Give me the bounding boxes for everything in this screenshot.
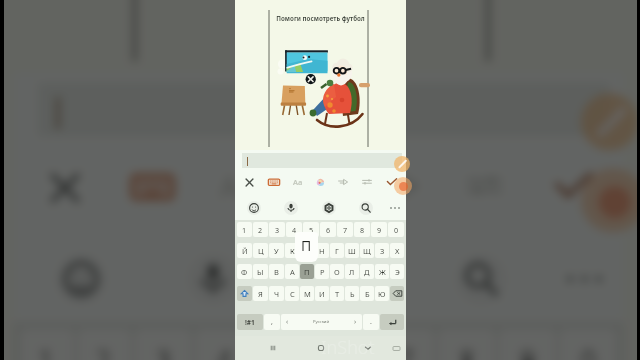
button[interactable]: Э	[390, 264, 404, 279]
button[interactable]: Keyboard	[117, 150, 188, 222]
button[interactable]: Close	[239, 172, 259, 192]
staticText: Е	[305, 246, 310, 256]
button[interactable]: More options	[388, 201, 402, 215]
button[interactable]: Я	[253, 286, 268, 301]
button[interactable]: Done	[538, 150, 609, 222]
button[interactable]: 6	[317, 329, 374, 360]
button[interactable]: 0	[559, 329, 617, 360]
button[interactable]: Search	[456, 254, 506, 304]
button[interactable]: В	[269, 264, 284, 279]
button[interactable]: 7	[377, 329, 434, 360]
button[interactable]: З	[375, 243, 389, 258]
button[interactable]: Ш	[345, 243, 359, 258]
staticText: Ж	[379, 267, 386, 277]
staticText: ‹	[286, 317, 289, 327]
button[interactable]: Close	[27, 150, 99, 222]
staticText: 2	[95, 340, 113, 360]
button[interactable]: О	[330, 264, 344, 279]
button[interactable]: Keyboard	[264, 172, 284, 192]
button[interactable]: 1	[237, 222, 252, 237]
staticText: 6	[326, 225, 331, 235]
button[interactable]: Edit text	[394, 156, 410, 172]
button[interactable]: Ц	[253, 243, 268, 258]
button[interactable]: Щ	[360, 243, 374, 258]
button[interactable]: Ч	[269, 286, 284, 301]
button[interactable]: 5	[256, 329, 313, 360]
button[interactable]: Л	[345, 264, 359, 279]
button[interactable]: 8	[354, 222, 370, 237]
button[interactable]: Search	[359, 201, 373, 215]
button[interactable]: Ь	[345, 286, 359, 301]
button[interactable]: А	[285, 264, 299, 279]
button[interactable]: !#1	[237, 314, 263, 330]
button[interactable]: Colour	[310, 172, 330, 192]
staticText: Русский	[313, 319, 330, 325]
button[interactable]: Aa	[288, 172, 308, 192]
button[interactable]: Е	[300, 243, 314, 258]
button[interactable]	[242, 153, 402, 168]
button[interactable]: К	[285, 243, 299, 258]
button[interactable]: 4	[286, 222, 302, 237]
button[interactable]: 2	[253, 222, 268, 237]
staticText: 0	[581, 340, 599, 360]
button[interactable]: Shift	[237, 286, 252, 301]
button[interactable]: Т	[330, 286, 344, 301]
button[interactable]: 3	[135, 329, 192, 360]
button[interactable]: М	[300, 286, 314, 301]
button[interactable]: 4	[195, 329, 252, 360]
button[interactable]: ‹	[281, 314, 362, 330]
button[interactable]: Н	[315, 243, 329, 258]
button[interactable]: 6	[320, 222, 336, 237]
button[interactable]: 9	[499, 329, 556, 360]
staticText: А	[290, 267, 295, 277]
button[interactable]: Р	[315, 264, 329, 279]
button[interactable]: Voice input	[188, 254, 238, 304]
button[interactable]: Б	[360, 286, 374, 301]
button[interactable]: Backspace	[390, 286, 404, 301]
button[interactable]	[38, 83, 609, 136]
button[interactable]: П	[300, 264, 314, 279]
button[interactable]: 8	[438, 329, 495, 360]
button[interactable]: Text animation	[363, 150, 434, 222]
button[interactable]: 5	[303, 222, 319, 237]
button[interactable]: .	[363, 314, 379, 330]
button[interactable]: Done	[382, 172, 402, 192]
button[interactable]: Text animation	[333, 172, 353, 192]
button[interactable]: Adjust	[357, 172, 377, 192]
button[interactable]: Ж	[375, 264, 389, 279]
button[interactable]: 3	[269, 222, 285, 237]
button[interactable]: Й	[237, 243, 252, 258]
staticText: !#1	[245, 318, 255, 327]
button[interactable]: Voice input	[284, 201, 298, 215]
button[interactable]: 7	[337, 222, 353, 237]
button[interactable]: Keyboard settings	[322, 201, 336, 215]
button[interactable]: У	[269, 243, 284, 258]
button[interactable]: Д	[360, 264, 374, 279]
button[interactable]: Enter	[380, 314, 404, 330]
button[interactable]: Recent apps	[264, 339, 282, 357]
button[interactable]: Ф	[237, 264, 252, 279]
button[interactable]: Home	[312, 339, 330, 357]
button[interactable]: Change keyboard	[390, 342, 402, 354]
button[interactable]: Г	[330, 243, 344, 258]
button[interactable]: 9	[371, 222, 387, 237]
button[interactable]: Emoji	[247, 201, 261, 215]
button[interactable]: Keyboard settings	[324, 254, 374, 304]
button[interactable]: Х	[390, 243, 404, 258]
button[interactable]: Edit text	[581, 93, 638, 150]
button[interactable]: Hide keyboard	[359, 339, 377, 357]
button[interactable]: Colour	[281, 150, 352, 222]
button[interactable]: И	[315, 286, 329, 301]
button[interactable]: С	[285, 286, 299, 301]
button[interactable]: Ы	[253, 264, 268, 279]
button[interactable]: Emoji	[56, 254, 106, 304]
button[interactable]: ,	[264, 314, 280, 330]
button[interactable]: Aa	[202, 150, 274, 222]
button[interactable]: Ю	[375, 286, 389, 301]
staticText: 8	[459, 340, 477, 360]
button[interactable]: 0	[388, 222, 404, 237]
